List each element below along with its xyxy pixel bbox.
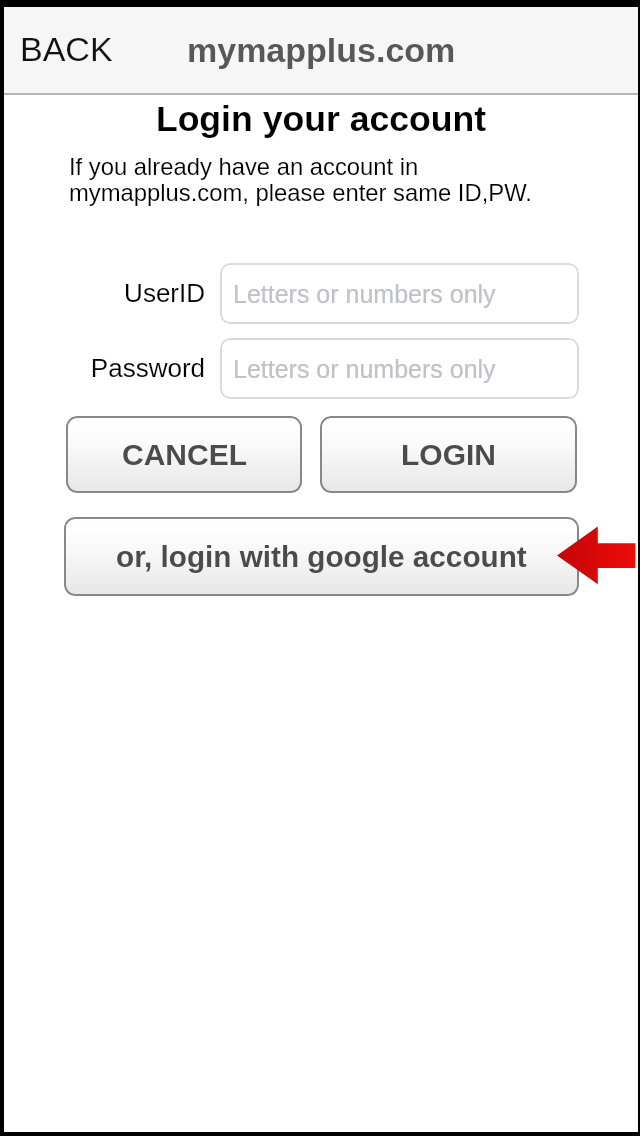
staticText: UserID <box>4 278 205 307</box>
staticText: Letters or numbers only <box>233 355 496 383</box>
other: Pointer <box>552 522 640 590</box>
button[interactable]: LOGIN <box>320 416 577 493</box>
button[interactable]: Letters or numbers only <box>220 263 579 324</box>
staticText: Login your account <box>4 99 638 139</box>
button[interactable]: CANCEL <box>66 416 302 493</box>
button[interactable]: Back <box>8 15 125 83</box>
staticText: mymapplus.com <box>187 31 456 69</box>
staticText: or, login with google account <box>116 540 527 573</box>
staticText: CANCEL <box>122 438 247 472</box>
staticText: Password <box>4 353 205 382</box>
staticText: LOGIN <box>401 438 496 472</box>
staticText: If you already have an account in mymapp… <box>69 153 532 206</box>
staticText: Letters or numbers only <box>233 280 496 308</box>
button[interactable]: or, login with google account <box>64 517 579 596</box>
staticText: BACK <box>20 30 113 68</box>
button[interactable]: Letters or numbers only <box>220 338 579 399</box>
